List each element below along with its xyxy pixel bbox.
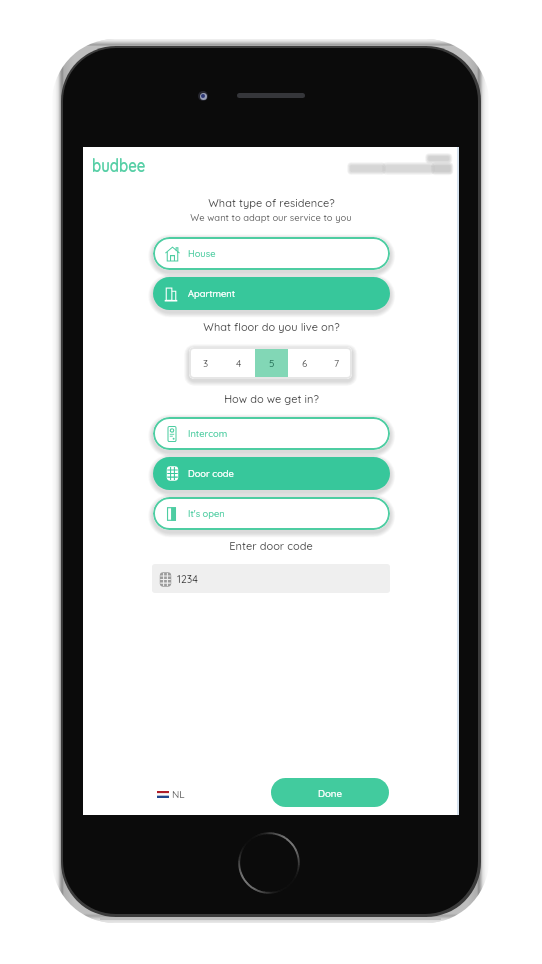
staticText: Intercom <box>188 428 228 440</box>
staticText: It's open <box>188 508 225 520</box>
button[interactable]: NL <box>155 785 187 804</box>
staticText: Done <box>318 787 343 799</box>
button[interactable]: House <box>153 237 390 270</box>
button[interactable]: 5 <box>255 347 288 379</box>
staticText: Enter door code <box>229 539 313 553</box>
button[interactable]: Intercom <box>153 417 390 450</box>
staticText: 3 <box>203 357 209 369</box>
button[interactable]: 3 <box>189 347 222 379</box>
staticText: What floor do you live on? <box>203 320 340 334</box>
staticText: 6 <box>302 357 308 369</box>
staticText: 1234 <box>177 573 198 586</box>
staticText: NL <box>172 788 185 801</box>
button[interactable]: 1234 <box>152 564 390 593</box>
button[interactable]: Door code <box>153 457 390 490</box>
staticText: Door code <box>188 468 234 480</box>
staticText: What type of residence? <box>208 196 335 210</box>
staticText: 5 <box>269 357 275 369</box>
staticText: How do we get in? <box>224 392 319 406</box>
button[interactable]: It's open <box>153 497 390 530</box>
button[interactable]: 4 <box>222 347 255 379</box>
staticText: Apartment <box>188 288 236 300</box>
staticText: We want to adapt our service to you <box>190 212 352 224</box>
staticText: budbee <box>92 153 145 175</box>
button[interactable]: 7 <box>321 347 352 379</box>
button[interactable]: 6 <box>288 347 321 379</box>
staticText: 7 <box>334 357 340 369</box>
button[interactable]: budbee <box>92 153 148 172</box>
staticText: House <box>188 248 216 260</box>
button[interactable]: Apartment <box>153 277 390 310</box>
staticText: 4 <box>236 357 242 369</box>
button[interactable]: Done <box>271 778 389 807</box>
